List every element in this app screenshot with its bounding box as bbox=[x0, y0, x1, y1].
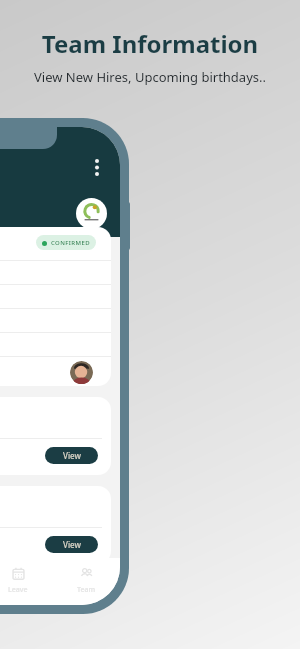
button[interactable]: Employee avatar bbox=[70, 361, 93, 384]
staticText: Team bbox=[77, 585, 96, 595]
button[interactable]: Team bbox=[52, 558, 120, 605]
staticText: Team Information bbox=[0, 27, 300, 60]
button[interactable]: Company logo bbox=[76, 198, 107, 229]
button[interactable]: View bbox=[0, 397, 111, 475]
staticText: CONFIRMED bbox=[51, 239, 90, 247]
button[interactable]: View bbox=[45, 447, 98, 464]
button[interactable]: CONFIRMED bbox=[0, 227, 111, 386]
staticText: Leave bbox=[8, 585, 28, 595]
button[interactable]: Leave bbox=[0, 558, 52, 605]
button[interactable]: View bbox=[0, 486, 111, 564]
staticText: View New Hires, Upcoming birthdays.. bbox=[0, 68, 300, 86]
button[interactable]: View bbox=[45, 536, 98, 553]
button[interactable]: More options bbox=[84, 151, 110, 183]
staticText: View bbox=[63, 539, 81, 550]
staticText: View bbox=[63, 450, 81, 461]
